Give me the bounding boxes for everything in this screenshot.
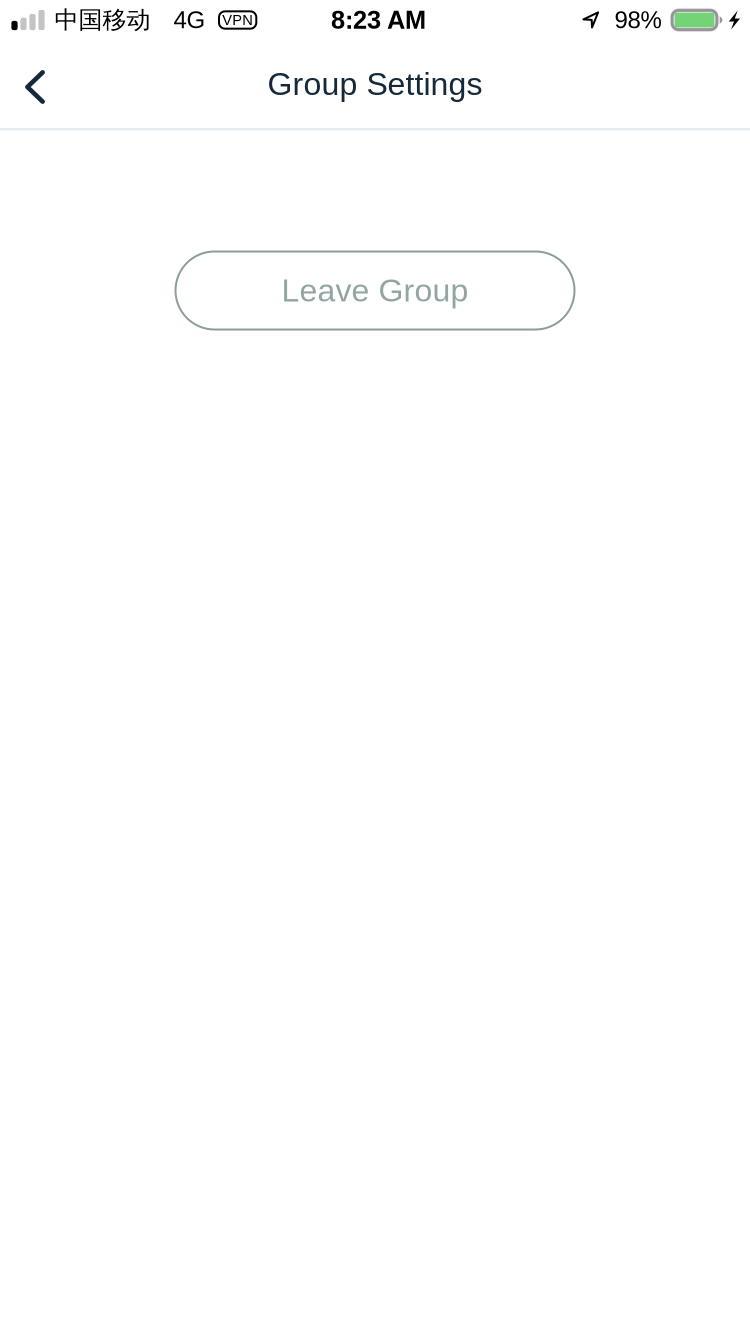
staticText: 4G (173, 7, 205, 33)
button[interactable]: Leave Group (175, 251, 574, 329)
staticText: VPN (222, 12, 253, 28)
staticText: 98% (614, 7, 661, 33)
staticText: 中国移动 (54, 5, 150, 35)
staticText: Group Settings (267, 66, 482, 102)
button[interactable]: Back (0, 40, 70, 128)
staticText: 8:23 AM (331, 6, 426, 34)
staticText: Leave Group (281, 273, 468, 308)
